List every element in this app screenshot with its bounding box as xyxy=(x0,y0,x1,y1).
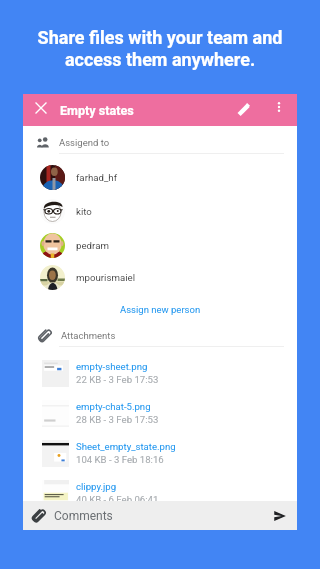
staticText: Comments xyxy=(54,509,274,523)
button[interactable]: Assign new person xyxy=(23,297,297,321)
staticText: mpourismaiel xyxy=(76,272,136,283)
staticText: 28 KB - 3 Feb 17:53 xyxy=(76,414,159,425)
staticText: Empty states xyxy=(60,103,134,118)
staticText: clippy.jpg xyxy=(76,481,117,492)
staticText: empty-sheet.png xyxy=(76,361,148,372)
button[interactable]: Close xyxy=(31,98,51,118)
button[interactable]: empty-sheet.png xyxy=(23,353,297,393)
button[interactable]: kito xyxy=(23,194,297,228)
staticText: farhad_hf xyxy=(76,172,118,183)
staticText: Assign new person xyxy=(120,304,201,315)
button[interactable]: Sheet_empty_state.png xyxy=(23,433,297,473)
button[interactable]: Edit xyxy=(232,98,254,120)
button[interactable]: mpourismaiel xyxy=(23,260,297,294)
staticText: kito xyxy=(76,206,92,217)
button[interactable]: empty-chat-5.png xyxy=(23,393,297,433)
staticText: Share files with your team and access th… xyxy=(0,27,320,71)
staticText: 104 KB - 3 Feb 18:16 xyxy=(76,454,164,465)
staticText: Sheet_empty_state.png xyxy=(76,441,176,452)
staticText: 40 KB - 6 Feb 06:41 xyxy=(76,494,159,505)
button[interactable]: More options xyxy=(270,98,288,116)
staticText: Attachments xyxy=(61,330,116,341)
staticText: 22 KB - 3 Feb 17:53 xyxy=(76,374,159,385)
button[interactable]: Comments xyxy=(23,501,297,530)
button[interactable]: pedram xyxy=(23,228,297,262)
button[interactable]: clippy.jpg xyxy=(23,473,297,513)
staticText: pedram xyxy=(76,240,109,251)
staticText: empty-chat-5.png xyxy=(76,401,151,412)
staticText: Assigend to xyxy=(59,137,110,148)
button[interactable]: farhad_hf xyxy=(23,160,297,194)
